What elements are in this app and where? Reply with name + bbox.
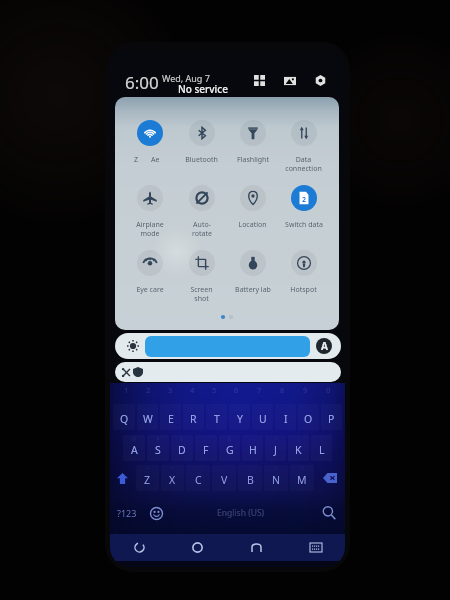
staticText: Switch data: [285, 220, 323, 230]
staticText: English (US): [217, 507, 265, 519]
button[interactable]: Battery lab: [227, 250, 278, 315]
staticText: D: [178, 443, 186, 457]
button[interactable]: Keyboard: [286, 534, 345, 561]
staticText: Hotspot: [290, 285, 317, 295]
staticText: 0: [326, 385, 331, 395]
button[interactable]: Airplane mode: [124, 185, 176, 250]
button[interactable]: S: [147, 435, 169, 461]
staticText: H: [249, 443, 257, 457]
staticText: ": [171, 465, 174, 473]
button[interactable]: I: [275, 404, 296, 430]
staticText: Z: [144, 473, 151, 487]
button[interactable]: Gallery: [284, 75, 296, 87]
staticText: J: [274, 443, 277, 457]
button[interactable]: Edit tiles: [254, 75, 265, 86]
staticText: 4: [190, 385, 195, 395]
button[interactable]: More quick settings: [115, 362, 341, 382]
staticText: @: [131, 435, 137, 443]
staticText: A: [321, 339, 328, 353]
button[interactable]: Search: [313, 498, 345, 528]
button[interactable]: G: [219, 435, 240, 461]
button[interactable]: Backspace: [315, 463, 345, 493]
button[interactable]: O: [298, 404, 319, 430]
staticText: ?: [301, 465, 304, 473]
staticText: !: [275, 465, 277, 473]
button[interactable]: Back: [110, 534, 168, 561]
button[interactable]: Screen shot: [176, 250, 227, 315]
button[interactable]: ?123: [110, 498, 143, 528]
button[interactable]: Hotspot: [278, 250, 329, 315]
button[interactable]: Eye care: [124, 250, 176, 315]
button[interactable]: K: [288, 435, 309, 461]
staticText: #: [156, 435, 160, 443]
button[interactable]: Auto- rotate: [176, 185, 227, 250]
staticText: 7: [257, 385, 262, 395]
button[interactable]: Z: [136, 465, 159, 491]
button[interactable]: English (US): [169, 498, 313, 528]
staticText: L: [319, 443, 325, 457]
button[interactable]: 2: [278, 185, 329, 250]
button[interactable]: E: [160, 404, 181, 430]
staticText: N: [272, 473, 280, 487]
button[interactable]: Bluetooth: [176, 120, 227, 185]
staticText: Eye care: [136, 285, 164, 295]
button[interactable]: J: [265, 435, 286, 461]
staticText: G: [226, 443, 234, 457]
button[interactable]: H: [242, 435, 263, 461]
button[interactable]: N: [264, 465, 288, 491]
button[interactable]: Recents: [227, 534, 286, 561]
staticText: Airplane mode: [136, 220, 164, 238]
staticText: Flashlight: [237, 155, 269, 165]
button[interactable]: T: [206, 404, 227, 430]
staticText: 3: [168, 385, 173, 395]
button[interactable]: F: [195, 435, 217, 461]
button[interactable]: Z: [124, 120, 176, 185]
staticText: M: [297, 473, 307, 487]
button[interactable]: Home: [168, 534, 227, 561]
staticText: O: [304, 412, 313, 426]
staticText: 6: [234, 385, 239, 395]
staticText: Screen shot: [190, 285, 213, 303]
button[interactable]: W: [137, 404, 158, 430]
staticText: No service: [178, 82, 228, 96]
staticText: $: [180, 435, 184, 443]
button[interactable]: Flashlight: [227, 120, 278, 185]
button[interactable]: Emoji: [143, 498, 169, 528]
staticText: 6:00: [125, 71, 159, 94]
staticText: ): [321, 435, 323, 443]
button[interactable]: R: [183, 404, 204, 430]
staticText: Battery lab: [235, 285, 271, 295]
staticText: T: [214, 412, 220, 426]
button[interactable]: M: [290, 465, 314, 491]
button[interactable]: Shift: [110, 463, 135, 493]
button[interactable]: Location: [227, 185, 278, 250]
button[interactable]: Y: [229, 404, 250, 430]
button[interactable]: D: [171, 435, 193, 461]
staticText: Wed, Aug 7: [162, 72, 210, 84]
button[interactable]: A: [123, 435, 145, 461]
staticText: 2: [146, 385, 151, 395]
button[interactable]: Data connection: [278, 120, 329, 185]
button[interactable]: L: [311, 435, 332, 461]
button[interactable]: V: [212, 465, 236, 491]
button[interactable]: Brightness: [115, 333, 341, 359]
button[interactable]: C: [186, 465, 210, 491]
button[interactable]: B: [238, 465, 262, 491]
button[interactable]: Q: [113, 404, 135, 430]
button[interactable]: Settings: [315, 75, 326, 86]
button[interactable]: P: [321, 404, 342, 430]
staticText: 5: [212, 385, 217, 395]
staticText: 9: [303, 385, 308, 395]
staticText: Ae: [151, 155, 160, 165]
staticText: W: [143, 412, 153, 426]
staticText: P: [328, 412, 335, 426]
button[interactable]: X: [161, 465, 184, 491]
staticText: Q: [120, 412, 129, 426]
button[interactable]: U: [252, 404, 273, 430]
